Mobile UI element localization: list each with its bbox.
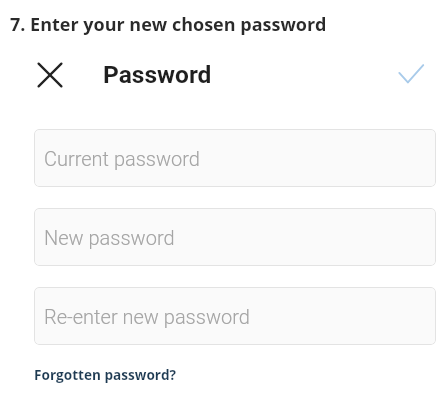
staticText: Forgotten password? [34, 365, 177, 384]
button[interactable]: Forgotten password? [34, 365, 177, 384]
staticText: 7. Enter your new chosen password [10, 12, 327, 37]
staticText: Current password [44, 147, 200, 170]
staticText: Re-enter new password [44, 305, 250, 328]
staticText: New password [44, 226, 175, 249]
button[interactable]: Confirm [389, 53, 433, 97]
button[interactable]: New password [34, 208, 436, 266]
button[interactable]: Re-enter new password [34, 287, 436, 345]
staticText: Password [103, 60, 212, 89]
button[interactable]: Current password [34, 129, 436, 187]
button[interactable]: Close [26, 51, 74, 99]
